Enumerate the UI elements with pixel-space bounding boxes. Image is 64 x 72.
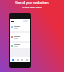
button[interactable] <box>10 43 30 48</box>
button[interactable] <box>10 23 30 31</box>
button[interactable] <box>10 33 30 41</box>
button[interactable]: Tab 1 <box>11 57 15 62</box>
button[interactable]: Tab 2 <box>16 57 20 62</box>
staticText: in one easy place <box>22 5 42 8</box>
staticText: View all your medications <box>15 1 49 5</box>
button[interactable]: Tab 3 <box>20 57 24 62</box>
button[interactable]: Add <box>23 20 28 22</box>
button[interactable]: Tab 4 <box>25 57 29 62</box>
